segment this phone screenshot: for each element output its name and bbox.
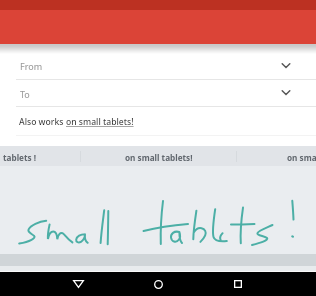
button[interactable]: tablets ! xyxy=(0,146,80,166)
staticText: To xyxy=(20,88,30,100)
staticText: Also works xyxy=(19,116,66,128)
other: Expand To xyxy=(280,88,292,97)
staticText: on small tablets! xyxy=(125,152,193,163)
staticText: From xyxy=(20,60,43,72)
button[interactable]: To xyxy=(0,80,316,107)
staticText: on small tablets! xyxy=(66,116,134,128)
button[interactable]: Recents xyxy=(226,278,250,290)
button[interactable]: From xyxy=(0,52,316,80)
staticText: on small tablets! xyxy=(287,152,316,163)
other: Expand From xyxy=(280,61,292,70)
button[interactable]: Back xyxy=(66,278,90,290)
button[interactable]: Home xyxy=(146,278,170,290)
staticText: tablets ! xyxy=(3,152,37,163)
button[interactable]: on small tablets! xyxy=(237,146,316,166)
button[interactable]: on small tablets! xyxy=(80,146,237,166)
button[interactable]: Also works xyxy=(0,107,316,135)
